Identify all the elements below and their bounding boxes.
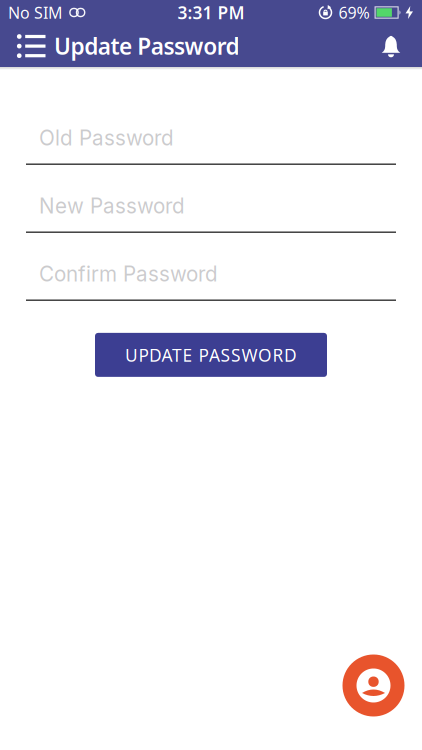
staticText: 69% [338, 2, 369, 23]
staticText: No SIM [8, 2, 63, 23]
staticText: UPDATE PASSWORD [125, 343, 297, 366]
staticText: Confirm Password [39, 261, 218, 286]
staticText: New Password [39, 193, 185, 218]
staticText: Old Password [39, 125, 174, 150]
button[interactable]: Menu [0, 32, 54, 59]
staticText: Update Password [54, 31, 239, 61]
button[interactable]: Notifications [381, 34, 422, 58]
button[interactable]: UPDATE PASSWORD [95, 333, 327, 377]
staticText: 3:31 PM [177, 1, 244, 24]
button[interactable]: Profile [342, 654, 404, 716]
